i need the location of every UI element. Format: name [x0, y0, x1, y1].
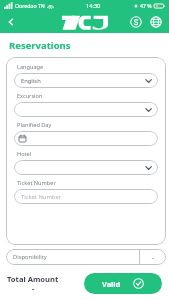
staticText: Reservations	[9, 39, 71, 52]
button[interactable]: Ticket Number	[14, 189, 158, 204]
staticText: Ooredoo TN	[15, 2, 45, 9]
button[interactable]: Valid	[84, 273, 162, 294]
staticText: English	[21, 77, 145, 85]
staticText: Total Amount	[7, 274, 59, 284]
staticText: Valid	[102, 279, 121, 289]
staticText: 47 %	[140, 2, 152, 9]
staticText: Ticket Number	[21, 193, 152, 201]
button[interactable]: Sync	[127, 13, 145, 31]
button[interactable]: Back	[3, 14, 19, 30]
staticText: Hotel	[17, 150, 32, 158]
staticText: -	[152, 253, 155, 262]
staticText: Planified Day	[17, 121, 52, 129]
staticText: 14:30	[86, 2, 101, 10]
button[interactable]: Disponibility	[6, 249, 166, 265]
staticText: Disponibility	[13, 253, 139, 261]
button[interactable]	[14, 160, 158, 175]
button[interactable]: English	[14, 73, 158, 88]
staticText: Ticket Number	[17, 179, 56, 187]
button[interactable]	[14, 131, 158, 146]
staticText: Language	[17, 63, 44, 71]
button[interactable]	[14, 102, 158, 117]
button[interactable]: Language	[147, 13, 165, 31]
staticText: -	[32, 284, 35, 294]
staticText: Excursion	[17, 92, 43, 100]
